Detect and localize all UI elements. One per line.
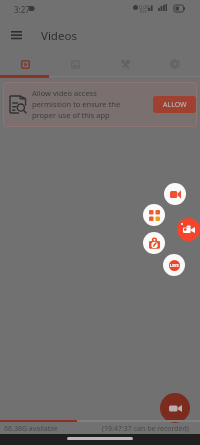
button[interactable]: Videos xyxy=(0,52,50,76)
staticText: 3:27 xyxy=(14,4,30,15)
staticText: Allow video access permission to ensure … xyxy=(32,88,124,120)
button[interactable]: Toolbox xyxy=(143,232,165,254)
button[interactable]: Settings xyxy=(150,52,200,76)
staticText: (19:47:37 can be recorded) xyxy=(102,424,189,434)
staticText: 0.09 xyxy=(139,4,149,11)
button[interactable]: Live xyxy=(163,254,185,276)
button[interactable]: Grid xyxy=(143,204,165,226)
button[interactable]: ALLOW xyxy=(153,96,196,113)
button[interactable]: Record video xyxy=(164,183,186,205)
staticText: LIVE xyxy=(170,263,179,268)
button[interactable]: Allow video access permission to ensure … xyxy=(3,82,197,127)
staticText: K/s xyxy=(140,8,147,14)
button[interactable]: Open navigation menu xyxy=(4,23,28,47)
staticText: ALLOW xyxy=(163,100,187,110)
button[interactable]: Tools xyxy=(100,52,150,76)
button[interactable]: Close recording menu xyxy=(177,218,200,241)
button[interactable]: Start recording xyxy=(160,393,190,423)
staticText: Videos xyxy=(41,28,77,44)
staticText: 66.38G available xyxy=(4,424,58,434)
